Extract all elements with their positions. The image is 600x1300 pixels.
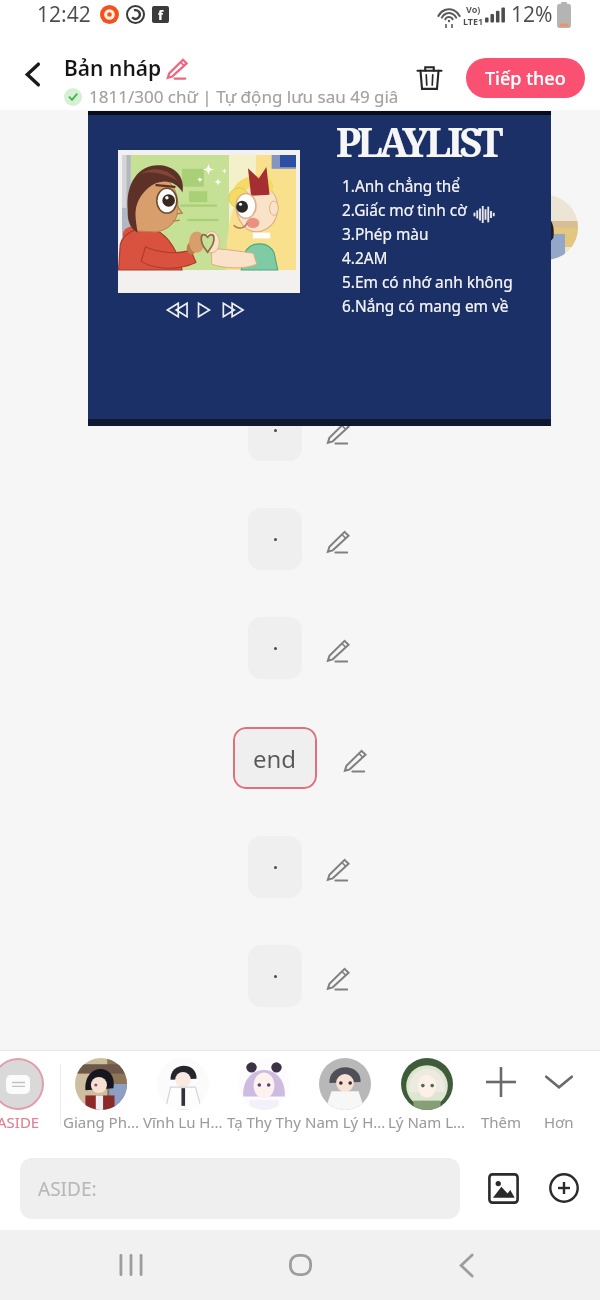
staticText: Giang Ph... <box>63 1112 140 1132</box>
staticText: end <box>253 742 297 775</box>
button[interactable]: Lý Nam L... <box>386 1050 468 1152</box>
staticText: PLAYLIST <box>336 115 500 168</box>
button[interactable]: ASIDE <box>0 1050 70 1152</box>
staticText: 1.Anh chẳng thể <box>342 176 461 197</box>
button[interactable]: Edit <box>321 853 355 887</box>
button[interactable]: Edit <box>338 744 372 778</box>
staticText: 4.2AM <box>342 248 388 269</box>
button[interactable]: Thêm <box>471 1050 531 1152</box>
staticText: 1811/300 chữ | Tự động lưu sau 49 giâ <box>89 85 399 108</box>
staticText: Nam Lý H... <box>305 1112 386 1132</box>
button[interactable]: Edit <box>321 416 355 450</box>
button[interactable]: PLAYLIST <box>88 111 551 426</box>
button[interactable] <box>248 617 302 679</box>
button[interactable]: Edit <box>321 525 355 559</box>
button[interactable]: Recents <box>103 1237 159 1293</box>
staticText: 3.Phép màu <box>342 224 429 245</box>
button[interactable]: Edit <box>321 634 355 668</box>
button[interactable]: Nam Lý H... <box>304 1050 386 1152</box>
staticText: Tạ Thy Thy <box>227 1112 301 1132</box>
staticText: Tiếp theo <box>485 66 566 91</box>
button[interactable]: Giang Ph... <box>60 1050 142 1152</box>
staticText: Vo) <box>466 3 481 15</box>
staticText: Thêm <box>481 1112 522 1132</box>
button[interactable]: Back <box>8 50 56 98</box>
button[interactable]: Vĩnh Lu H... <box>142 1050 224 1152</box>
button[interactable]: Home <box>272 1237 328 1293</box>
button[interactable]: Hơn <box>529 1050 589 1152</box>
button[interactable]: Delete <box>403 51 455 103</box>
staticText: 6.Nắng có mang em về <box>342 296 509 317</box>
button[interactable] <box>248 945 302 1007</box>
button[interactable] <box>248 399 302 461</box>
button[interactable]: More options <box>542 1166 586 1210</box>
staticText: f <box>158 6 164 23</box>
button[interactable]: Back <box>438 1237 494 1293</box>
button[interactable]: end <box>233 727 317 789</box>
staticText: LTE1 <box>463 15 484 27</box>
button[interactable] <box>248 836 302 898</box>
staticText: 2.Giấc mơ tình cờ <box>342 200 467 221</box>
staticText: Bản nháp <box>64 54 162 83</box>
staticText: Hơn <box>544 1112 574 1132</box>
button[interactable]: Tạ Thy Thy <box>223 1050 305 1152</box>
staticText: Lý Nam L... <box>388 1112 466 1132</box>
button[interactable]: Tiếp theo <box>466 58 585 98</box>
staticText: ASIDE: <box>38 1176 97 1202</box>
staticText: Vĩnh Lu H... <box>143 1112 223 1132</box>
staticText: 5.Em có nhớ anh không <box>342 272 513 293</box>
staticText: ASIDE <box>0 1112 40 1132</box>
button[interactable]: ASIDE: <box>20 1158 460 1219</box>
staticText: 12:42 <box>37 0 91 29</box>
button[interactable]: Edit <box>321 962 355 996</box>
button[interactable]: Add image <box>481 1166 525 1210</box>
button[interactable] <box>248 508 302 570</box>
staticText: 12% <box>511 0 553 29</box>
